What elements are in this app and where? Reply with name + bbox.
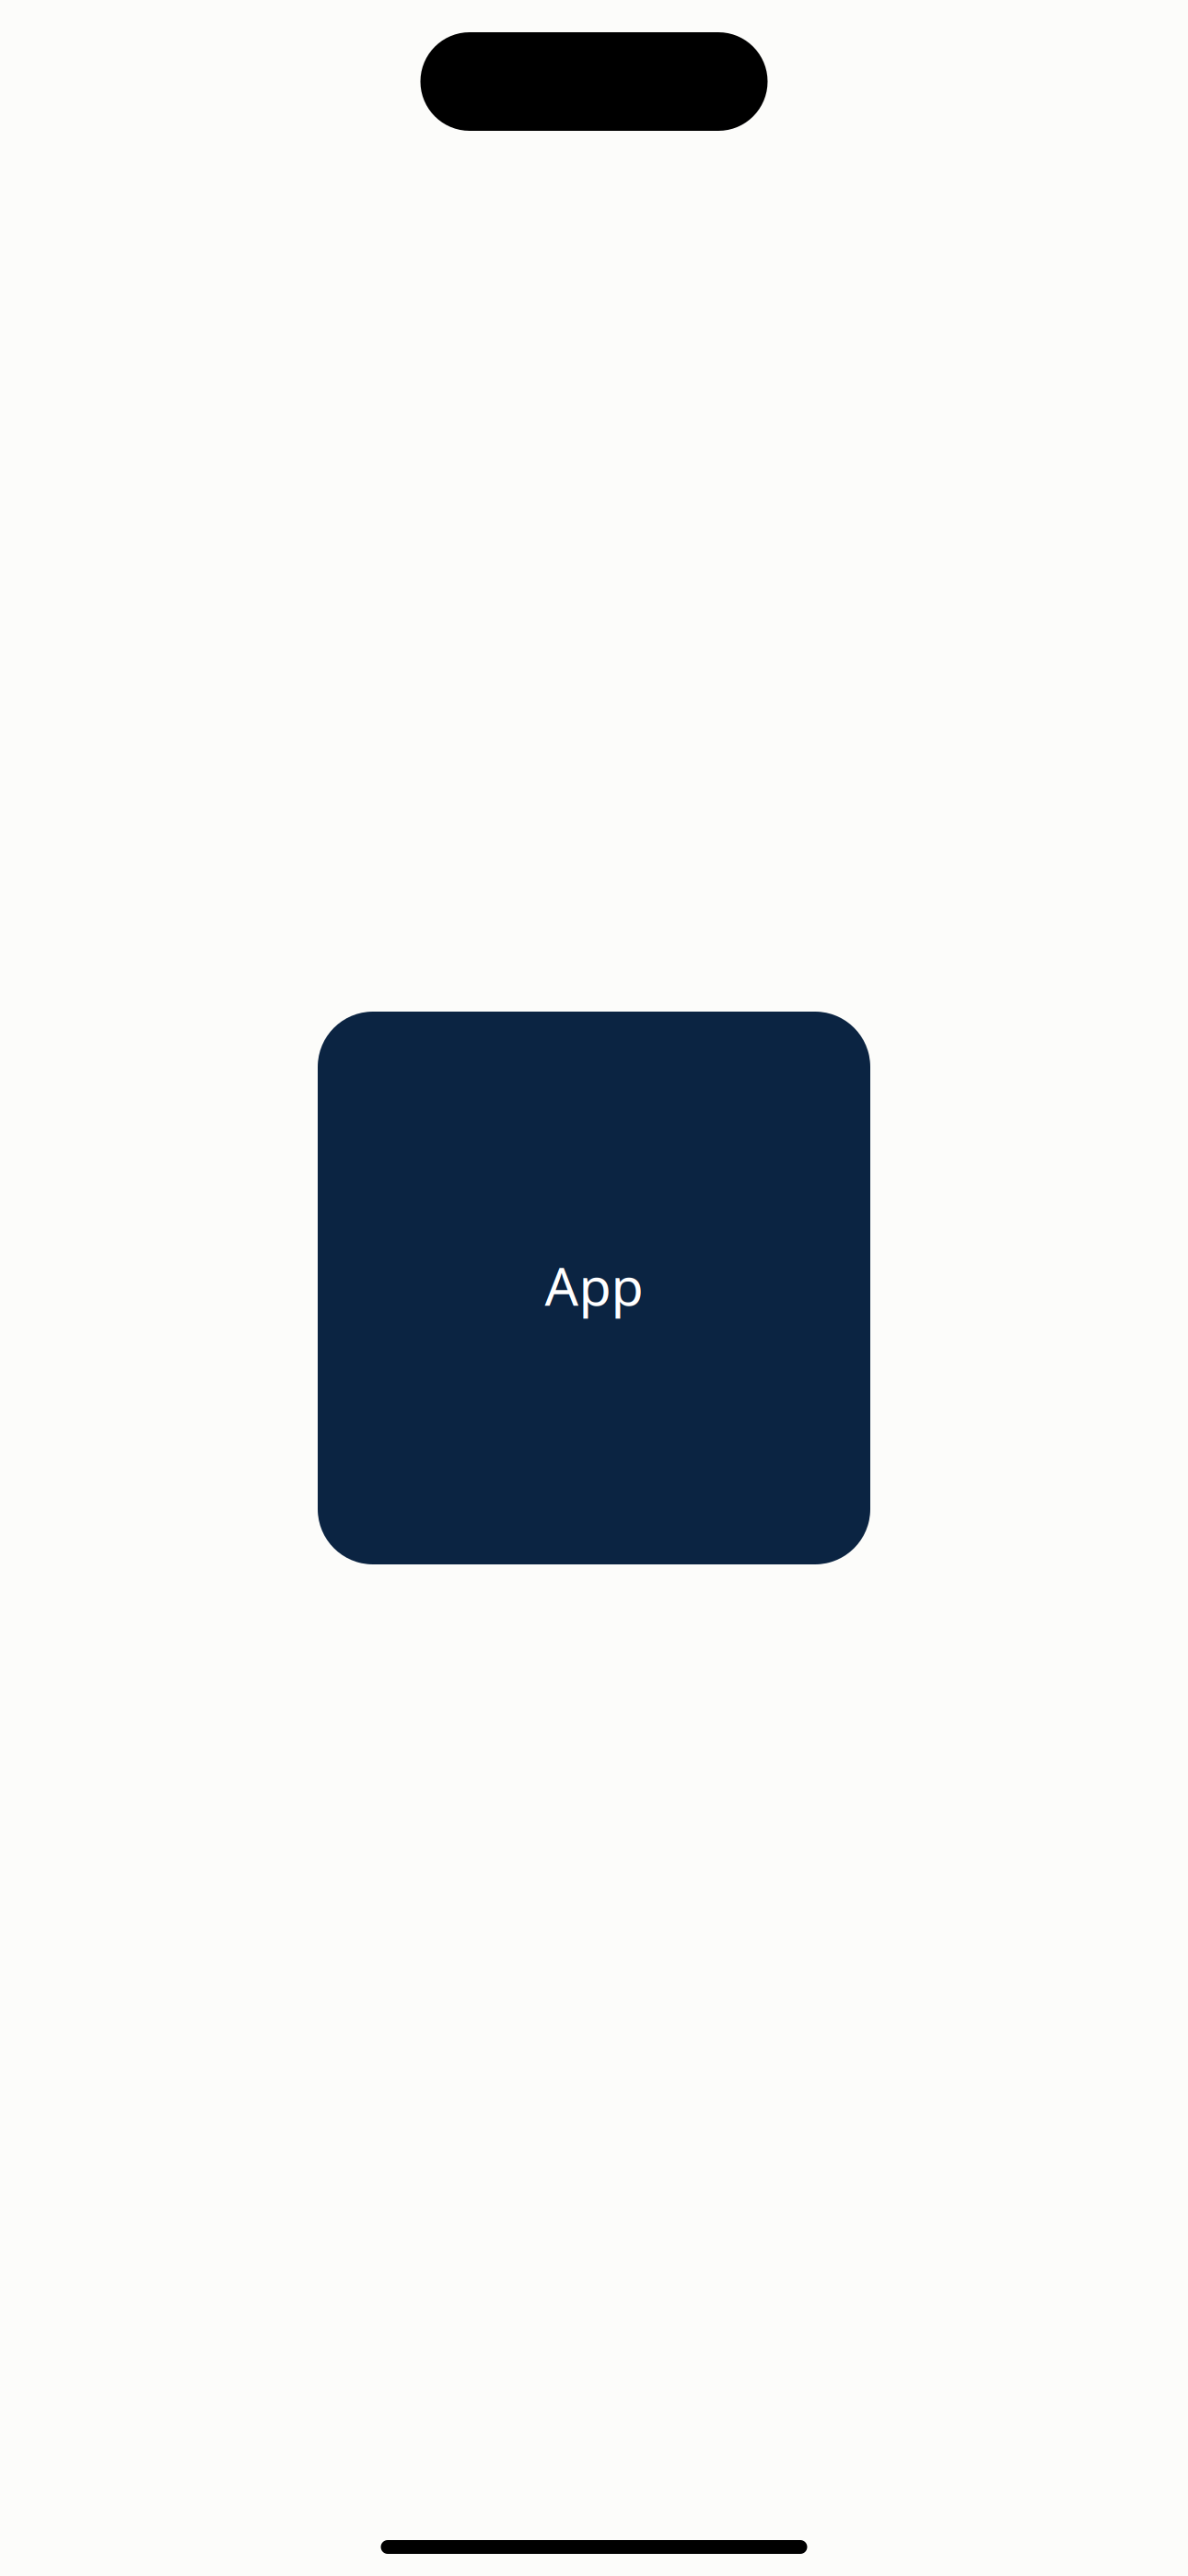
button[interactable]: App xyxy=(318,1012,870,1564)
staticText: App xyxy=(545,1250,643,1320)
